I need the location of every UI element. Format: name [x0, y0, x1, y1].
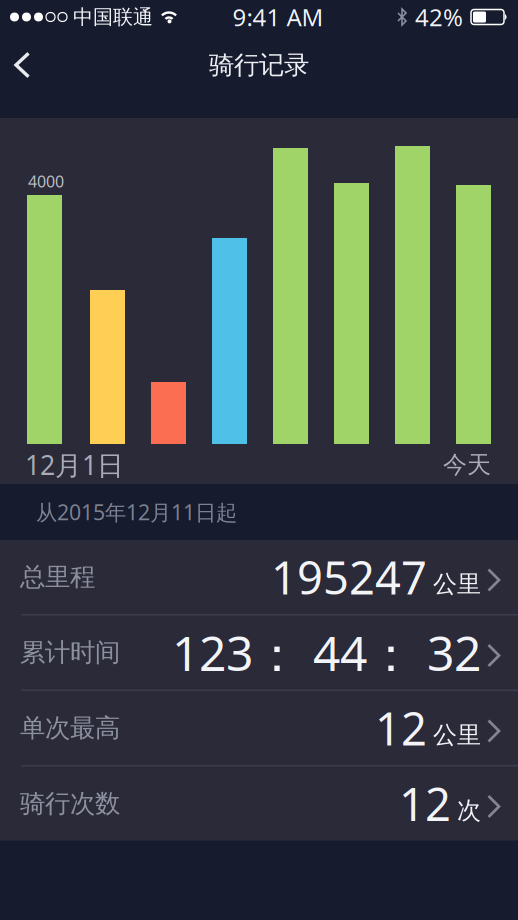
staticText: 单次最高	[20, 712, 120, 743]
staticText: 骑行记录	[209, 49, 309, 80]
staticText: 累计时间	[20, 637, 120, 668]
staticText: 公里	[433, 720, 481, 750]
staticText: 9:41 AM	[232, 1, 323, 33]
staticText: 今天	[443, 450, 491, 479]
staticText: 12	[375, 698, 427, 758]
staticText: 骑行次数	[20, 788, 120, 819]
staticText: 42%	[415, 1, 463, 33]
staticText: 12	[399, 773, 451, 834]
staticText: 公里	[433, 569, 481, 599]
staticText: 次	[457, 796, 481, 825]
button[interactable]: 总里程	[0, 540, 518, 614]
staticText: 总里程	[20, 561, 95, 592]
button[interactable]: 单次最高	[0, 691, 518, 765]
staticText: 195247	[271, 547, 427, 607]
staticText: 从2015年12月11日起	[36, 498, 237, 526]
staticText: 123： 44： 32	[172, 620, 481, 684]
staticText: 4000	[28, 171, 64, 192]
staticText: 12月1日	[25, 447, 124, 482]
staticText: 中国联通	[73, 5, 153, 29]
button[interactable]: 骑行次数	[0, 766, 518, 840]
button[interactable]: 累计时间	[0, 615, 518, 689]
button[interactable]	[0, 43, 31, 86]
